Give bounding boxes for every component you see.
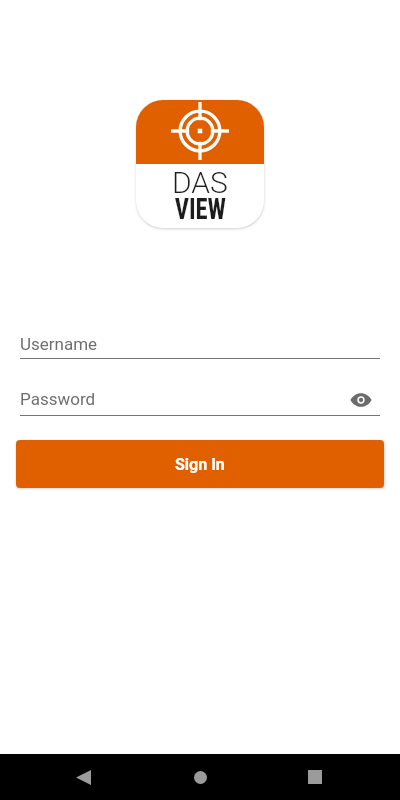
staticText: Username (20, 334, 98, 354)
button[interactable]: Password (20, 385, 380, 416)
button[interactable]: Recent apps (295, 757, 335, 797)
button[interactable]: Home (180, 757, 220, 797)
staticText: DAS (172, 165, 228, 200)
button[interactable]: Back (63, 757, 103, 797)
button[interactable]: Username (20, 330, 380, 359)
button[interactable]: Sign In (16, 440, 384, 488)
staticText: Sign In (175, 455, 225, 474)
button[interactable]: Show password (340, 379, 382, 421)
staticText: Password (20, 389, 96, 409)
staticText: VIEW (175, 191, 226, 226)
